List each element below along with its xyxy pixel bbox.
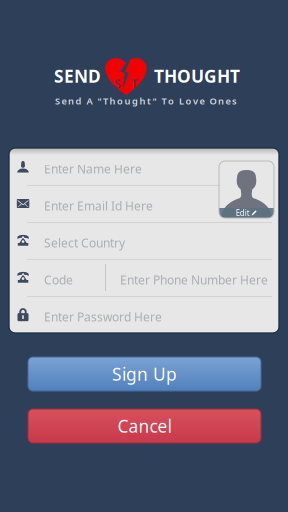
staticText: Edit xyxy=(236,208,250,218)
staticText: THOUGHT xyxy=(154,64,240,87)
staticText: SEND xyxy=(54,64,101,87)
button[interactable]: Sign Up xyxy=(28,357,261,391)
button[interactable]: Edit profile photo xyxy=(219,161,274,218)
staticText: T xyxy=(131,76,138,92)
staticText: Enter Phone Number Here xyxy=(120,272,268,288)
staticText: Cancel xyxy=(117,414,171,437)
staticText: Code xyxy=(44,272,73,288)
button[interactable]: Cancel xyxy=(28,409,261,443)
staticText: S xyxy=(114,76,121,92)
staticText: Send A "Thought" To Love Ones xyxy=(55,95,237,107)
staticText: Enter Password Here xyxy=(44,309,162,325)
staticText: Sign Up xyxy=(112,362,177,385)
staticText: Enter Email Id Here xyxy=(44,198,153,214)
staticText: Enter Name Here xyxy=(44,161,142,177)
staticText: Select Country xyxy=(44,235,125,251)
